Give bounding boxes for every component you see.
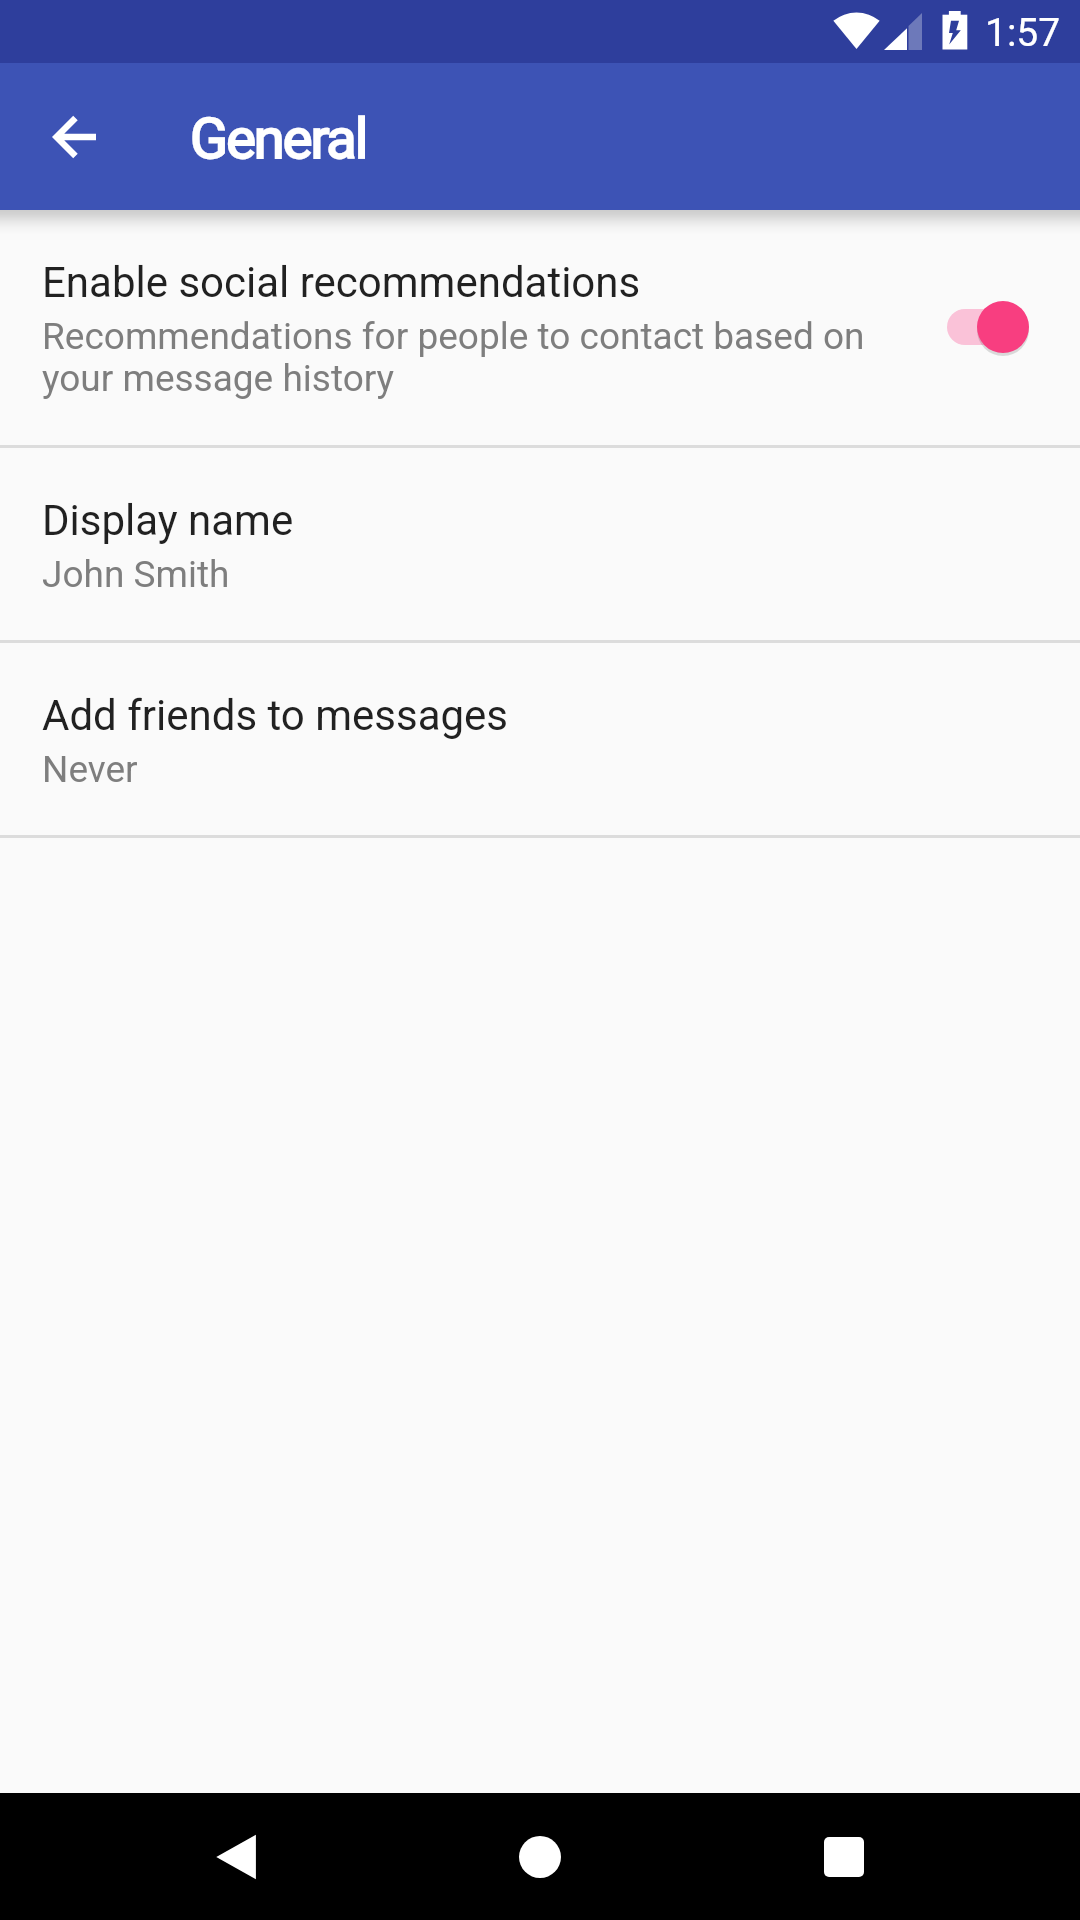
- staticText: Enable social recommendations: [42, 258, 641, 307]
- staticText: Never: [42, 749, 138, 791]
- button[interactable]: Enable social recommendations: [0, 210, 1080, 445]
- button[interactable]: Navigate up: [8, 71, 140, 203]
- button[interactable]: Display name: [0, 448, 1080, 640]
- staticText: Recommendations for people to contact ba…: [42, 316, 910, 400]
- staticText: Display name: [42, 496, 294, 545]
- staticText: 1:57: [985, 10, 1061, 56]
- staticText: General: [190, 106, 367, 172]
- button[interactable]: Add friends to messages: [0, 643, 1080, 835]
- staticText: Add friends to messages: [42, 691, 509, 740]
- button[interactable]: Enable social recommendations: [933, 291, 1049, 363]
- staticText: John Smith: [42, 554, 230, 596]
- button[interactable]: Back: [172, 1793, 300, 1920]
- button[interactable]: Home: [476, 1793, 604, 1920]
- button[interactable]: Recent apps: [780, 1793, 908, 1920]
